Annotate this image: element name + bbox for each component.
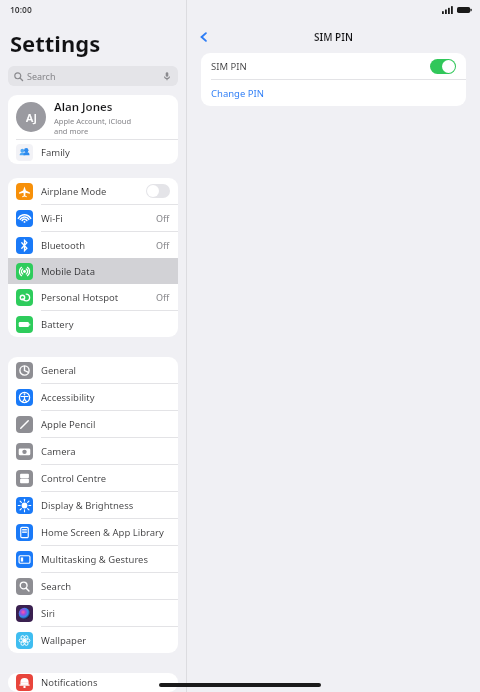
staticText: Home Screen & App Library [41,526,170,539]
button[interactable]: Multitasking & Gestures [8,546,178,572]
staticText: AJ [26,110,37,125]
staticText: Mobile Data [41,265,170,278]
staticText: Search [27,70,162,82]
staticText: Settings [10,28,101,58]
staticText: and more [54,126,89,136]
button[interactable]: Siri [8,600,178,626]
staticText: Notifications [41,676,170,689]
button[interactable]: Wi-Fi [8,205,178,231]
staticText: SIM PIN [314,30,353,44]
button[interactable]: Accessibility [8,384,178,410]
staticText: 10:00 [10,4,32,16]
button[interactable]: Search [8,573,178,599]
staticText: Search [41,580,170,593]
button[interactable]: Change PIN [201,80,466,106]
button[interactable]: SIM PIN [201,53,466,79]
button[interactable]: General [8,357,178,383]
button[interactable]: Family [8,140,178,164]
button[interactable]: Back [193,26,215,48]
staticText: Accessibility [41,391,170,404]
button[interactable]: Control Centre [8,465,178,491]
button[interactable]: Search [8,66,178,86]
staticText: Wallpaper [41,634,170,647]
staticText: Wi-Fi [41,212,156,225]
button[interactable]: Apple Pencil [8,411,178,437]
button[interactable]: Display & Brightness [8,492,178,518]
staticText: Multitasking & Gestures [41,553,170,566]
button[interactable]: AJ [8,95,178,139]
staticText: Apple Pencil [41,418,170,431]
staticText: Apple Account, iCloud [54,116,131,126]
staticText: Off [156,239,170,251]
button[interactable]: Camera [8,438,178,464]
button[interactable]: Notifications [8,673,178,692]
button[interactable]: Bluetooth [8,232,178,258]
button[interactable]: SIM PIN toggle on [430,59,456,74]
staticText: Change PIN [211,87,264,100]
staticText: Airplane Mode [41,185,146,198]
button[interactable]: Battery [8,311,178,337]
button[interactable]: Mobile Data [8,258,178,284]
staticText: Control Centre [41,472,170,485]
button[interactable]: Airplane Mode toggle [146,184,170,198]
staticText: Battery [41,318,170,331]
button[interactable]: Airplane Mode [8,178,178,204]
staticText: Bluetooth [41,239,156,252]
staticText: SIM PIN [211,60,430,73]
staticText: Personal Hotspot [41,291,156,304]
button[interactable]: Wallpaper [8,627,178,653]
staticText: Family [41,146,70,159]
staticText: Siri [41,607,170,620]
button[interactable]: Personal Hotspot [8,284,178,310]
staticText: Display & Brightness [41,499,170,512]
staticText: Camera [41,445,170,458]
staticText: Off [156,212,170,224]
staticText: General [41,364,170,377]
staticText: Off [156,291,170,303]
staticText: Alan Jones [54,99,113,115]
button[interactable]: Home Screen & App Library [8,519,178,545]
